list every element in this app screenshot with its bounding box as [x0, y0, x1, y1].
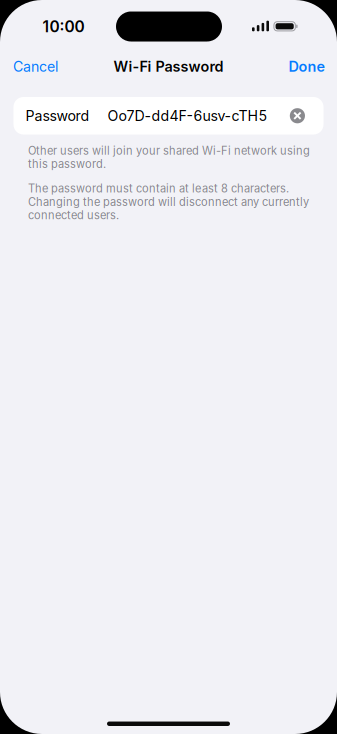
- staticText: Wi-Fi Password: [113, 58, 223, 75]
- button[interactable]: Done: [288, 58, 325, 75]
- button[interactable]: Cancel: [13, 58, 58, 75]
- staticText: Cancel: [13, 58, 58, 75]
- staticText: 10:00: [42, 17, 84, 36]
- button[interactable]: Clear text: [290, 108, 305, 123]
- staticText: Other users will join your shared Wi-Fi …: [28, 144, 310, 171]
- staticText: Done: [288, 58, 325, 75]
- staticText: Oo7D-dd4F-6usv-cTH5: [107, 107, 267, 124]
- staticText: The password must contain at least 8 cha…: [28, 182, 309, 222]
- staticText: Password: [25, 107, 89, 124]
